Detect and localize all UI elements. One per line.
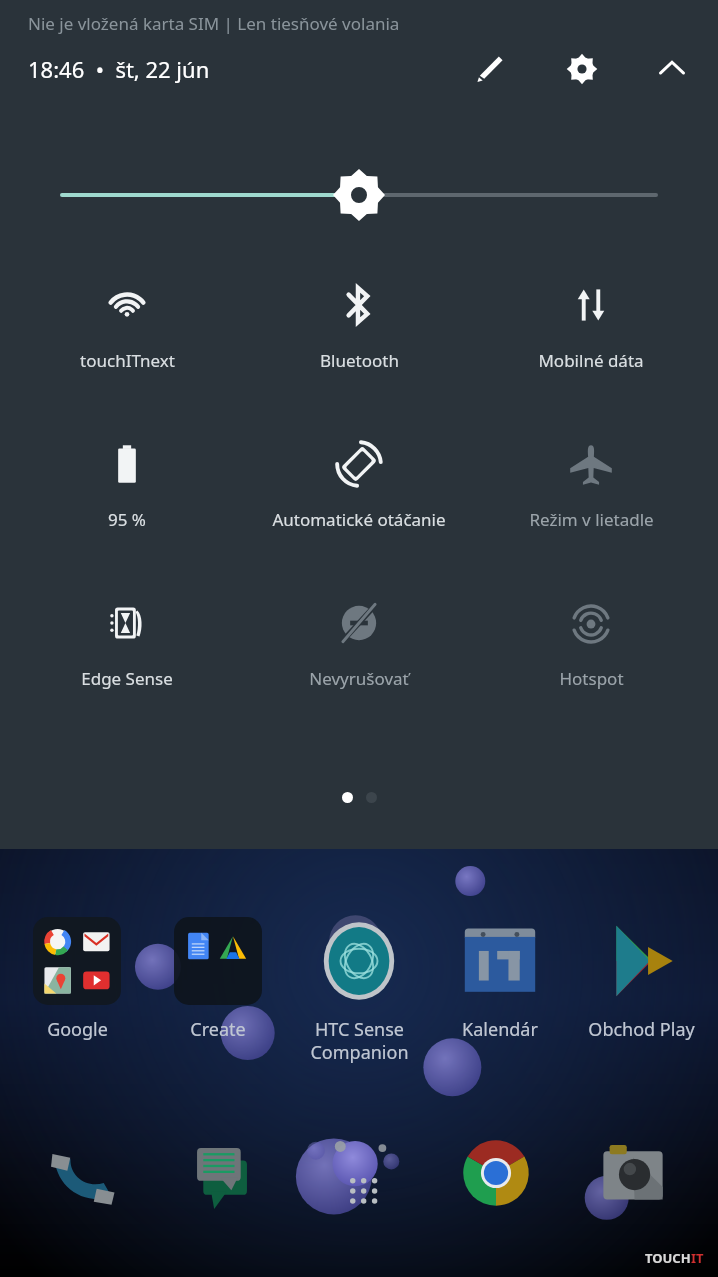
button[interactable]: Režim v lietadle xyxy=(486,434,696,535)
button[interactable] xyxy=(0,165,718,225)
button[interactable]: Messages xyxy=(170,1121,274,1225)
staticText: Režim v lietadle xyxy=(529,508,654,531)
button[interactable]: Camera xyxy=(581,1121,685,1225)
staticText: Obchod Play xyxy=(588,1017,695,1042)
button[interactable]: 95 % xyxy=(22,434,232,535)
staticText: Kalendár xyxy=(462,1017,538,1042)
staticText: HTC Sense Companion xyxy=(310,1017,409,1064)
staticText: Mobilné dáta xyxy=(538,349,644,372)
staticText: Nevyrušovať xyxy=(309,667,409,690)
button[interactable]: Settings xyxy=(558,45,606,93)
button[interactable]: Mobilné dáta xyxy=(486,275,696,376)
button[interactable]: Create xyxy=(154,917,282,1042)
button[interactable]: Bluetooth xyxy=(254,275,464,376)
button[interactable]: HTC Sense Companion xyxy=(295,917,423,1064)
staticText: TOUCH xyxy=(645,1249,691,1267)
button[interactable]: Kalendár xyxy=(436,917,564,1042)
button[interactable]: Nevyrušovať xyxy=(254,593,464,694)
staticText: Hotspot xyxy=(559,667,624,690)
button[interactable]: Collapse xyxy=(648,45,696,93)
button[interactable]: Phone xyxy=(33,1121,137,1225)
button[interactable]: Edit xyxy=(466,45,514,93)
staticText: 95 % xyxy=(108,508,146,531)
staticText: IT xyxy=(691,1249,704,1267)
button[interactable]: Chrome xyxy=(444,1121,548,1225)
staticText: 18:46 • št, 22 jún xyxy=(28,54,210,84)
staticText: Bluetooth xyxy=(320,349,399,372)
staticText: touchITnext xyxy=(80,349,175,372)
staticText: Create xyxy=(190,1017,246,1042)
button[interactable]: All apps xyxy=(307,1121,411,1225)
button[interactable]: Edge Sense xyxy=(22,593,232,694)
staticText: Automatické otáčanie xyxy=(272,508,446,531)
staticText: Google xyxy=(47,1017,108,1042)
button[interactable]: Automatické otáčanie xyxy=(254,434,464,535)
button[interactable]: Obchod Play xyxy=(577,917,705,1042)
button[interactable]: Hotspot xyxy=(486,593,696,694)
button[interactable]: Google xyxy=(13,917,141,1042)
staticText: Nie je vložená karta SIM | Len tiesňové … xyxy=(28,12,400,35)
staticText: Edge Sense xyxy=(81,667,173,690)
button[interactable]: touchITnext xyxy=(22,275,232,376)
